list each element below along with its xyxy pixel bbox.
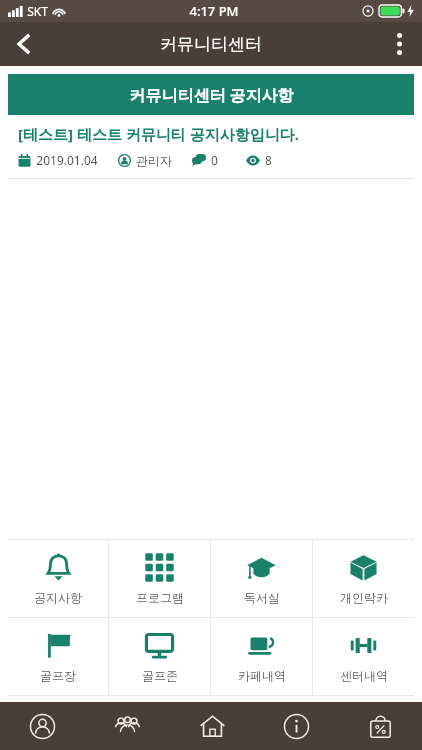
staticText: 커뮤니티센터 공지사항: [129, 84, 294, 106]
staticText: 2019.01.04: [36, 152, 98, 168]
staticText: 카페내역: [238, 668, 286, 683]
staticText: 8: [265, 152, 272, 168]
staticText: 관리자: [136, 153, 172, 168]
button[interactable]: 카페내역: [211, 618, 312, 695]
button[interactable]: Back: [0, 22, 48, 66]
staticText: 0: [211, 152, 218, 168]
button[interactable]: 골프장: [8, 618, 108, 695]
button[interactable]: 센터내역: [313, 618, 414, 695]
staticText: 골프존: [142, 668, 178, 683]
staticText: 4:17 PM: [189, 2, 239, 20]
staticText: [테스트] 테스트 커뮤니티 공지사항입니다.: [18, 124, 299, 144]
button[interactable]: My page: [0, 702, 85, 750]
button[interactable]: Community: [85, 702, 170, 750]
button[interactable]: Home: [170, 702, 254, 750]
button[interactable]: 개인락카: [313, 540, 414, 617]
staticText: 독서실: [244, 590, 280, 605]
button[interactable]: Information: [254, 702, 338, 750]
button[interactable]: 공지사항: [8, 540, 108, 617]
button[interactable]: 프로그램: [109, 540, 210, 617]
staticText: 개인락카: [340, 590, 388, 605]
button[interactable]: Shop: [338, 702, 422, 750]
staticText: 센터내역: [340, 668, 388, 683]
staticText: SKT: [27, 3, 48, 19]
button[interactable]: 독서실: [211, 540, 312, 617]
staticText: 공지사항: [34, 590, 82, 605]
button[interactable]: [테스트] 테스트 커뮤니티 공지사항입니다.: [18, 124, 404, 168]
staticText: 커뮤니티센터: [160, 34, 262, 55]
staticText: 골프장: [40, 668, 76, 683]
button[interactable]: More options: [376, 22, 422, 66]
staticText: 프로그램: [136, 590, 184, 605]
button[interactable]: 골프존: [109, 618, 210, 695]
